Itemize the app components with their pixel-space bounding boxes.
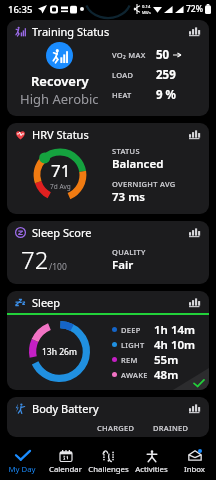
staticText: 7d Avg bbox=[50, 182, 71, 191]
staticText: High Aerobic bbox=[20, 90, 99, 108]
staticText: 16:35 bbox=[8, 3, 33, 16]
staticText: 1h 14m bbox=[154, 322, 196, 337]
staticText: Balanced bbox=[112, 156, 164, 172]
button[interactable]: Training Status bbox=[7, 20, 209, 116]
staticText: Sleep Score bbox=[32, 225, 92, 240]
button[interactable]: My Day bbox=[0, 444, 44, 480]
button[interactable]: Inbox bbox=[173, 444, 216, 480]
staticText: Inbox bbox=[184, 464, 205, 475]
staticText: 4h 10m bbox=[154, 337, 196, 352]
staticText: DEEP bbox=[121, 325, 154, 335]
staticText: Recovery bbox=[31, 72, 89, 90]
staticText: 259 bbox=[156, 67, 176, 83]
staticText: 72 bbox=[21, 243, 49, 276]
staticText: LIGHT bbox=[121, 340, 154, 350]
staticText: HEAT bbox=[112, 90, 156, 100]
button[interactable]: Challenges bbox=[87, 444, 130, 480]
staticText: 72% bbox=[186, 3, 203, 15]
staticText: AWAKE bbox=[121, 370, 154, 380]
staticText: Training Status bbox=[32, 24, 110, 39]
staticText: STATUS bbox=[112, 146, 140, 156]
staticText: 9 % bbox=[156, 87, 176, 103]
button[interactable]: Training Status chart bbox=[187, 24, 201, 38]
button[interactable]: Calendar bbox=[44, 444, 87, 480]
staticText: REM bbox=[121, 355, 154, 365]
button[interactable]: HRV Status bbox=[7, 123, 209, 214]
staticText: 50 bbox=[156, 47, 170, 63]
staticText: DRAINED bbox=[153, 423, 189, 433]
staticText: 13h 26m bbox=[42, 346, 77, 358]
staticText: CHARGED bbox=[97, 423, 135, 433]
staticText: VO₂ MAX bbox=[112, 50, 156, 60]
staticText: 55m bbox=[154, 352, 179, 367]
staticText: HRV Status bbox=[32, 127, 89, 142]
button[interactable]: Sleep bbox=[7, 291, 209, 390]
staticText: QUALITY bbox=[112, 247, 146, 257]
button[interactable]: Sleep chart bbox=[187, 295, 201, 309]
staticText: Fair bbox=[112, 257, 134, 273]
staticText: Calendar bbox=[49, 464, 82, 475]
staticText: My Day bbox=[8, 464, 36, 475]
button[interactable]: Activities bbox=[130, 444, 173, 480]
staticText: 71 bbox=[51, 159, 71, 182]
button[interactable]: Sleep Score chart bbox=[187, 225, 201, 239]
staticText: Body Battery bbox=[32, 401, 99, 416]
button[interactable]: Sleep Score bbox=[7, 221, 209, 284]
staticText: LOAD bbox=[112, 70, 156, 80]
staticText: Challenges bbox=[88, 464, 129, 475]
staticText: /100 bbox=[49, 261, 67, 273]
staticText: OVERNIGHT AVG bbox=[112, 179, 176, 189]
button[interactable]: Body Battery chart bbox=[187, 401, 201, 415]
staticText: MB/s bbox=[142, 10, 151, 15]
staticText: 73 ms bbox=[112, 189, 145, 205]
button[interactable]: HRV Status chart bbox=[187, 127, 201, 141]
staticText: Sleep bbox=[32, 295, 61, 310]
button[interactable]: Body Battery bbox=[7, 397, 209, 437]
staticText: 48m bbox=[154, 367, 179, 382]
staticText: 0.14 bbox=[142, 4, 151, 10]
staticText: Activities bbox=[135, 464, 168, 475]
